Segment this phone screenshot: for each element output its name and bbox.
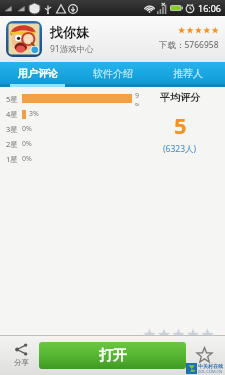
button[interactable]: 找你妹 (0, 16, 225, 62)
staticText: 4星 (6, 109, 18, 119)
staticText: 1星 (6, 154, 18, 164)
button[interactable]: 分享 (3, 335, 39, 375)
staticText: 平均评分 (160, 91, 200, 104)
staticText: 分享 (14, 358, 29, 367)
button[interactable]: 收藏 (186, 335, 222, 375)
button[interactable]: 软件介绍 (75, 62, 150, 84)
staticText: 5 (174, 110, 187, 140)
button[interactable]: 打开 (39, 342, 186, 369)
staticText: 打开 (99, 347, 127, 365)
staticText: 3% (29, 109, 39, 119)
staticText: 3星 (6, 124, 18, 134)
staticText: 推荐人 (173, 67, 203, 80)
staticText: 下载：5766958 (159, 39, 219, 51)
staticText: 91游戏中心 (50, 43, 94, 55)
button[interactable]: 推荐人 (150, 62, 225, 84)
staticText: 用户评论 (18, 67, 58, 80)
staticText: ZOL.COM.CN (198, 369, 222, 374)
staticText: 0% (22, 154, 32, 164)
staticText: 94% (135, 91, 139, 106)
button[interactable]: 用户评论 (0, 62, 75, 84)
staticText: (6323人) (163, 143, 197, 155)
staticText: 16:06 (198, 2, 222, 14)
staticText: 0% (22, 124, 32, 134)
staticText: 找你妹 (50, 24, 89, 40)
staticText: 2星 (6, 139, 18, 149)
staticText: 软件介绍 (93, 67, 133, 80)
staticText: 5星 (6, 94, 18, 104)
staticText: 中关村在线 (198, 363, 223, 369)
staticText: 0% (22, 139, 32, 149)
